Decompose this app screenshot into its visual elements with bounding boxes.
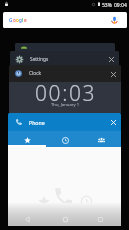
button[interactable]: Phone [8, 113, 121, 131]
staticText: o [16, 17, 19, 23]
staticText: Settings [30, 56, 49, 63]
staticText: G [9, 17, 13, 23]
button[interactable]: Voice search [110, 16, 119, 25]
staticText: l [22, 17, 24, 23]
staticText: e [24, 17, 27, 23]
staticText: Thu, January 1 [51, 102, 80, 108]
button[interactable]: 00:03 [9, 82, 121, 113]
button[interactable]: Home [54, 213, 76, 225]
staticText: o [13, 17, 16, 23]
button[interactable]: Recent app [15, 43, 115, 53]
button[interactable]: Clock [9, 65, 121, 82]
button[interactable]: Settings [10, 51, 119, 67]
button[interactable]: G [3, 12, 127, 28]
staticText: g [19, 17, 22, 23]
staticText: 00:03 [35, 79, 97, 108]
staticText: 53% [102, 2, 112, 9]
button[interactable]: Recents [45, 131, 83, 147]
staticText: Clock [29, 70, 42, 77]
button[interactable]: Close Clock [108, 69, 118, 79]
button[interactable]: Favorites [8, 131, 45, 147]
button[interactable]: Close Settings [106, 54, 116, 64]
button[interactable]: Back [16, 213, 38, 225]
button[interactable]: Contacts [83, 131, 121, 147]
staticText: 09:04 [114, 2, 127, 9]
staticText: Phone [29, 119, 45, 126]
button[interactable]: Close Phone [108, 117, 118, 127]
button[interactable]: Recent apps [89, 213, 111, 225]
